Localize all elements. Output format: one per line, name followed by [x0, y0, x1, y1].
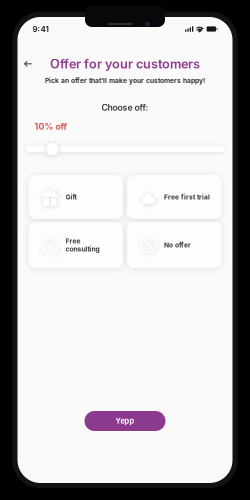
staticText: Free consulting: [65, 237, 99, 253]
staticText: No offer: [164, 241, 191, 249]
button[interactable]: Free consulting: [28, 222, 123, 268]
staticText: Free first trial: [164, 193, 210, 201]
staticText: Pick an offer that'll make your customer…: [45, 76, 205, 85]
staticText: Gift: [65, 193, 76, 201]
button[interactable]: No offer: [127, 222, 221, 268]
staticText: 10% off: [34, 121, 66, 132]
button[interactable]: Gift: [28, 175, 123, 219]
button[interactable]: Yepp: [84, 411, 165, 431]
staticText: 9:41: [32, 24, 48, 34]
staticText: Yepp: [115, 417, 134, 425]
button[interactable]: Back: [23, 57, 43, 71]
button[interactable]: Free first trial: [127, 175, 221, 219]
staticText: Offer for your customers: [50, 56, 200, 72]
staticText: Choose off:: [101, 102, 148, 113]
